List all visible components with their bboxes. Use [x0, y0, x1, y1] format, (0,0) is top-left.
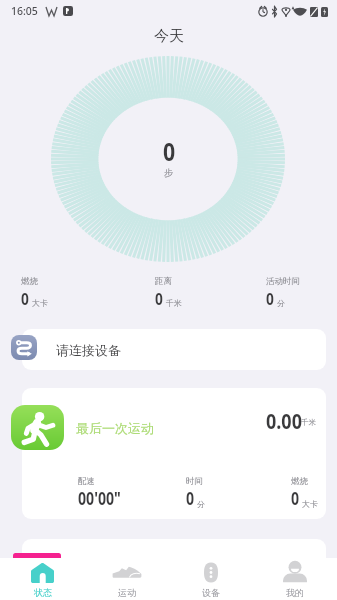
staticText: 0	[155, 287, 163, 309]
staticText: 大卡	[32, 298, 48, 308]
staticText: 步	[164, 167, 174, 179]
staticText: 设备	[202, 587, 220, 598]
staticText: 0	[163, 134, 175, 169]
staticText: 分	[197, 499, 205, 509]
staticText: 时间	[186, 476, 203, 487]
staticText: 状态	[34, 587, 52, 598]
staticText: 0	[186, 487, 194, 510]
staticText: 距离	[155, 276, 172, 287]
staticText: 0	[21, 287, 29, 309]
staticText: 0	[266, 287, 274, 309]
staticText: 活动时间	[266, 276, 300, 287]
staticText: 今天	[154, 27, 184, 46]
button[interactable]	[22, 329, 326, 370]
staticText: 燃烧	[21, 276, 38, 287]
staticText: 运动	[118, 587, 136, 598]
staticText: 16:05	[11, 4, 38, 18]
staticText: 0	[291, 487, 299, 510]
button[interactable]: 运动	[85, 558, 169, 600]
staticText: 00'00"	[78, 487, 121, 510]
button[interactable]: 我的	[253, 558, 337, 600]
staticText: 千米	[301, 418, 316, 427]
staticText: 0.00	[266, 406, 302, 436]
button[interactable]: 状态	[0, 558, 85, 600]
staticText: 大卡	[302, 499, 318, 509]
staticText: 我的	[286, 587, 304, 598]
staticText: 最后一次运动	[76, 420, 154, 436]
staticText: 燃烧	[291, 476, 308, 487]
staticText: 千米	[166, 298, 182, 308]
button[interactable]	[22, 388, 326, 519]
staticText: 配速	[78, 476, 95, 487]
button[interactable]: 设备	[169, 558, 253, 600]
staticText: 分	[277, 298, 285, 308]
staticText: 请连接设备	[56, 342, 121, 358]
